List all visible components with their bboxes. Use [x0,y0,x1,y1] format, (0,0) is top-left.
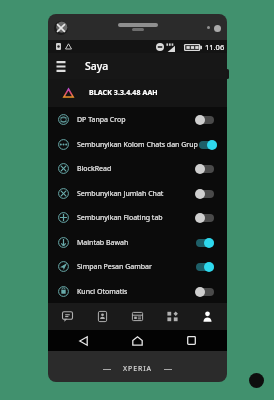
button[interactable] [195,187,214,200]
staticText: 11.06 [205,42,225,52]
button[interactable]: Close [54,21,68,35]
button[interactable] [195,285,214,298]
button[interactable] [195,162,214,175]
button[interactable]: DP Tanpa Crop [48,107,227,132]
button[interactable]: Maintab Bawah [48,230,227,255]
staticText: DP Tanpa Crop [77,115,126,125]
button[interactable]: Profile [192,303,223,330]
button[interactable]: Sembunyikan Kolom Chats dan Grup [48,132,227,157]
staticText: Sembunyikan Kolom Chats dan Grup [77,140,198,150]
button[interactable] [195,211,214,224]
button[interactable]: Updates [122,303,153,330]
button[interactable]: Contacts [87,303,118,330]
staticText: XPERIA [123,364,152,374]
button[interactable]: Recent apps [173,330,210,351]
staticText: Kunci Otomatis [77,287,128,297]
staticText: Simpan Pesan Gambar [77,262,152,272]
button[interactable]: Tools [157,303,188,330]
button[interactable]: Sembunyikan Floating tab [48,205,227,230]
button[interactable]: Back [65,330,102,351]
button[interactable]: Open navigation menu [53,58,69,74]
staticText: Maintab Bawah [77,238,129,248]
staticText: BlockRead [77,164,112,174]
button[interactable] [195,113,214,126]
button[interactable]: Kunci Otomatis [48,279,227,304]
button[interactable]: Simpan Pesan Gambar [48,254,227,279]
button[interactable]: Sembunyikan Jumlah Chat [48,181,227,206]
staticText: BLACK 3.3.4.48 AAH [89,88,158,98]
button[interactable] [198,138,217,151]
button[interactable] [195,236,214,249]
button[interactable]: Home [119,330,156,351]
staticText: Saya [85,59,109,73]
staticText: Sembunyikan Jumlah Chat [77,189,164,199]
button[interactable] [195,260,214,273]
button[interactable]: BlockRead [48,156,227,181]
button[interactable]: Chats [52,303,83,330]
staticText: Sembunyikan Floating tab [77,213,163,223]
